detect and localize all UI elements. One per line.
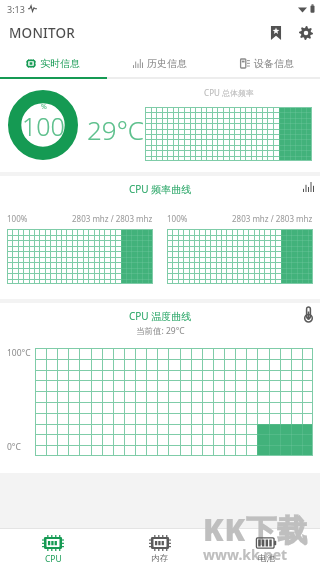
button[interactable]: Frequency chart bbox=[300, 179, 316, 195]
button[interactable]: 设备信息 bbox=[213, 49, 320, 77]
button[interactable]: CPU bbox=[0, 529, 106, 570]
button[interactable]: Temperature bbox=[300, 306, 316, 322]
staticText: 2803 mhz / 2803 mhz bbox=[72, 213, 153, 224]
staticText: 100% bbox=[167, 213, 188, 224]
staticText: 电池 bbox=[258, 553, 275, 564]
button[interactable]: 历史信息 bbox=[106, 49, 213, 77]
staticText: 3:13 bbox=[7, 3, 25, 15]
staticText: 100 bbox=[22, 109, 65, 143]
staticText: 实时信息 bbox=[40, 57, 80, 70]
staticText: 历史信息 bbox=[147, 57, 187, 70]
staticText: 当前值: 29°C bbox=[136, 325, 185, 337]
staticText: MONITOR bbox=[9, 24, 76, 42]
staticText: CPU bbox=[45, 553, 62, 565]
button[interactable]: Bookmark bbox=[263, 20, 289, 46]
staticText: 设备信息 bbox=[254, 57, 294, 70]
staticText: CPU 温度曲线 bbox=[129, 309, 192, 323]
staticText: 0°C bbox=[7, 441, 21, 453]
staticText: 29°C bbox=[87, 112, 145, 147]
button[interactable]: Settings bbox=[293, 20, 319, 46]
staticText: CPU 频率曲线 bbox=[129, 182, 192, 196]
staticText: 100°C bbox=[7, 347, 31, 359]
button[interactable]: 实时信息 bbox=[0, 49, 106, 77]
staticText: KK下载 bbox=[203, 509, 309, 550]
staticText: www.kk.net bbox=[203, 545, 288, 564]
button[interactable]: 内存 bbox=[106, 529, 213, 570]
button[interactable]: 电池 bbox=[213, 529, 320, 570]
staticText: % bbox=[41, 102, 47, 112]
staticText: 内存 bbox=[151, 553, 168, 564]
staticText: 100% bbox=[7, 213, 28, 224]
staticText: CPU 总体频率 bbox=[145, 87, 313, 98]
staticText: 2803 mhz / 2803 mhz bbox=[232, 213, 313, 224]
